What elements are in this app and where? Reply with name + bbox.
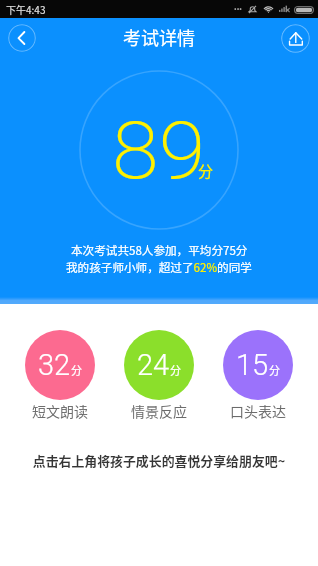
button[interactable]: 15 xyxy=(223,330,293,400)
staticText: 15 xyxy=(236,348,269,382)
staticText: 下午4:43 xyxy=(6,2,46,16)
staticText: 24 xyxy=(137,348,170,382)
staticText: 分 xyxy=(71,362,82,378)
button[interactable]: Share xyxy=(281,24,310,53)
staticText: 考试详情 xyxy=(123,24,195,50)
staticText: 本次考试共58人参加，平均分75分 xyxy=(71,242,248,259)
staticText: 情景反应 xyxy=(131,401,187,421)
staticText: 口头表达 xyxy=(230,401,286,421)
staticText: 分 xyxy=(269,362,280,378)
staticText: 点击右上角将孩子成长的喜悦分享给朋友吧~ xyxy=(0,451,318,470)
staticText: 分 xyxy=(198,160,214,182)
button[interactable]: Back xyxy=(8,24,36,52)
button[interactable]: 24 xyxy=(124,330,194,400)
staticText: 32 xyxy=(38,348,71,382)
staticText: 我的孩子师小师，超过了62%的同学 xyxy=(66,259,252,276)
staticText: 分 xyxy=(170,362,181,378)
staticText: ••• xyxy=(234,5,242,15)
button[interactable]: 32 xyxy=(25,330,95,400)
staticText: 短文朗读 xyxy=(32,401,88,421)
staticText: 89 xyxy=(112,104,206,198)
